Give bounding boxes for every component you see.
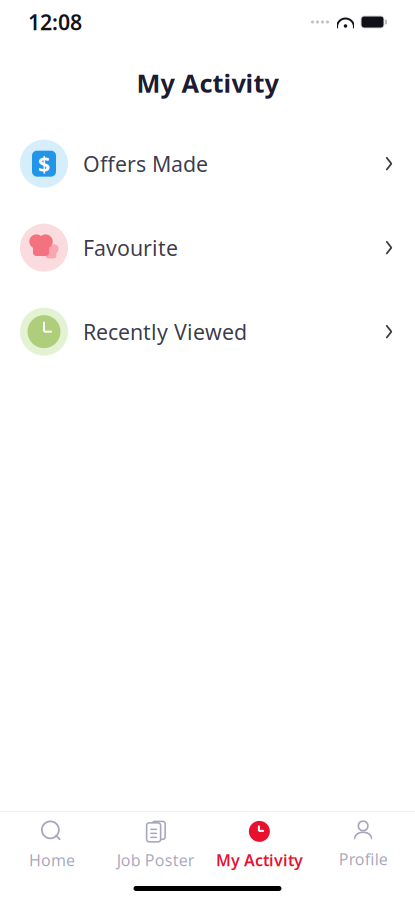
staticText: $: [38, 149, 50, 178]
button[interactable]: My Activity: [207, 807, 311, 879]
button[interactable]: Recently Viewed: [0, 290, 415, 374]
staticText: My Activity: [216, 849, 303, 871]
button[interactable]: Profile: [311, 808, 415, 878]
button[interactable]: Favourite: [0, 206, 415, 290]
staticText: Profile: [339, 848, 388, 870]
button[interactable]: Job Poster: [104, 807, 208, 879]
staticText: 12:08: [28, 8, 82, 36]
button[interactable]: Home: [0, 807, 104, 879]
staticText: Home: [29, 849, 75, 871]
staticText: Favourite: [83, 233, 178, 262]
staticText: My Activity: [136, 66, 278, 100]
staticText: Offers Made: [83, 149, 208, 178]
button[interactable]: $: [0, 122, 415, 206]
staticText: Job Poster: [117, 849, 195, 871]
staticText: Recently Viewed: [83, 317, 247, 346]
